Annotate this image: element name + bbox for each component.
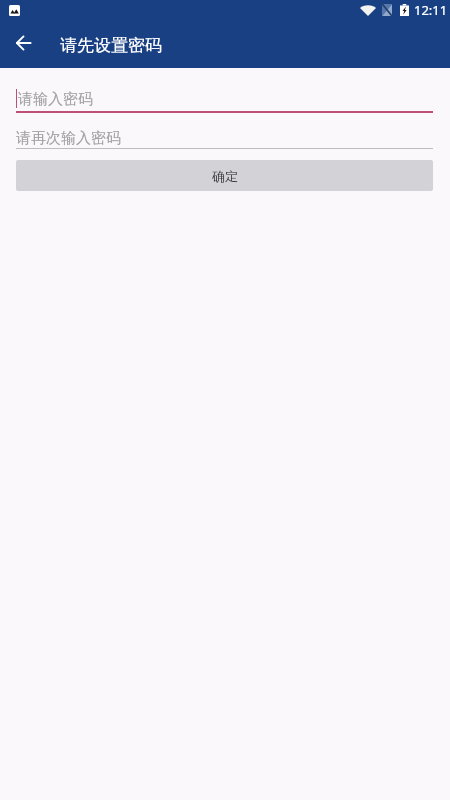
- staticText: 请输入密码: [18, 90, 93, 109]
- staticText: 确定: [212, 168, 238, 184]
- button[interactable]: 请输入密码: [0, 68, 450, 113]
- staticText: 12:11: [414, 1, 448, 19]
- button[interactable]: 确定: [16, 160, 433, 191]
- button[interactable]: 请再次输入密码: [0, 113, 450, 149]
- button[interactable]: Back: [2, 26, 44, 68]
- staticText: 请再次输入密码: [16, 129, 121, 148]
- staticText: 请先设置密码: [60, 35, 162, 56]
